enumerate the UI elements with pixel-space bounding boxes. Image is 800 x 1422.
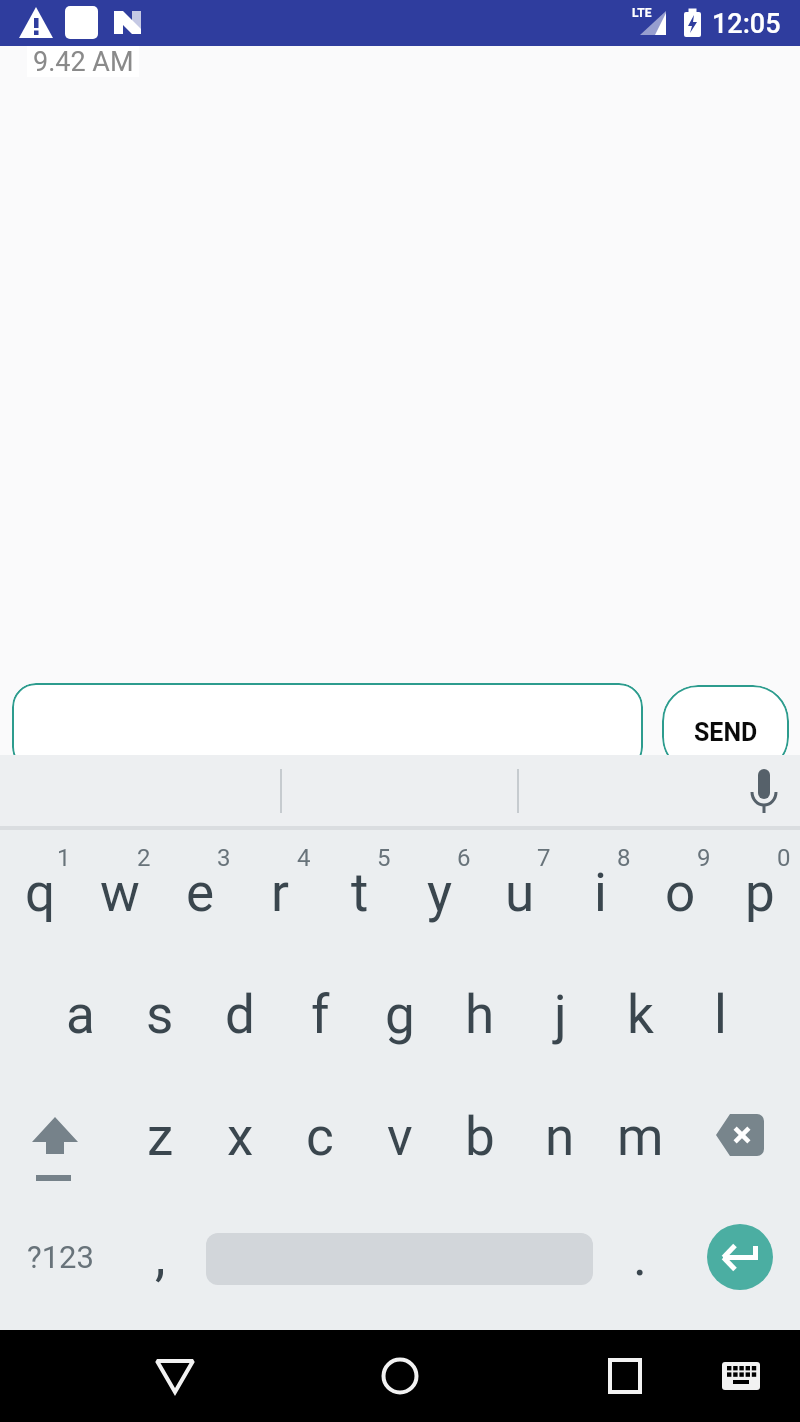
button[interactable]: q xyxy=(0,830,80,952)
button[interactable]: SEND xyxy=(662,685,789,755)
button[interactable] xyxy=(680,1074,800,1196)
button[interactable]: v xyxy=(360,1074,440,1196)
button[interactable] xyxy=(732,761,796,825)
button[interactable]: f xyxy=(280,952,360,1074)
staticText: 9.42 AM xyxy=(33,46,134,77)
button[interactable]: t xyxy=(320,830,400,952)
button[interactable]: . xyxy=(600,1196,680,1318)
staticText: SEND xyxy=(694,718,758,747)
button[interactable]: i xyxy=(560,830,640,952)
button[interactable]: b xyxy=(440,1074,520,1196)
staticText: u xyxy=(505,862,535,924)
button[interactable]: m xyxy=(600,1074,680,1196)
staticText: 0 xyxy=(777,844,791,872)
staticText: f xyxy=(311,984,330,1046)
button[interactable]: g xyxy=(360,952,440,1074)
button[interactable] xyxy=(453,1330,680,1422)
staticText: , xyxy=(155,1226,166,1288)
staticText: m xyxy=(617,1106,664,1168)
button[interactable]: r xyxy=(240,830,320,952)
staticText: p xyxy=(745,862,775,924)
staticText: v xyxy=(387,1106,413,1168)
staticText: b xyxy=(465,1106,495,1168)
staticText: k xyxy=(627,984,654,1046)
staticText: w xyxy=(100,862,140,924)
button[interactable]: l xyxy=(680,952,760,1074)
button[interactable]: x xyxy=(200,1074,280,1196)
staticText: 6 xyxy=(457,844,471,872)
button[interactable]: h xyxy=(440,952,520,1074)
staticText: 3 xyxy=(217,844,231,872)
staticText: c xyxy=(306,1106,334,1168)
staticText: LTE xyxy=(632,6,652,20)
button[interactable]: , xyxy=(120,1196,200,1318)
button[interactable]: y xyxy=(400,830,480,952)
staticText: . xyxy=(633,1226,647,1288)
staticText: r xyxy=(271,862,289,924)
staticText: 5 xyxy=(377,844,391,872)
staticText: l xyxy=(714,984,727,1046)
button[interactable] xyxy=(0,1330,226,1422)
button[interactable]: z xyxy=(120,1074,200,1196)
staticText: n xyxy=(545,1106,575,1168)
staticText: s xyxy=(146,984,174,1046)
staticText: g xyxy=(385,984,415,1046)
staticText: q xyxy=(25,862,56,924)
staticText: h xyxy=(465,984,495,1046)
staticText: 4 xyxy=(297,844,311,872)
button[interactable] xyxy=(226,1330,453,1422)
button[interactable]: e xyxy=(160,830,240,952)
staticText: d xyxy=(225,984,255,1046)
button[interactable]: u xyxy=(480,830,560,952)
staticText: y xyxy=(427,862,453,924)
staticText: 9 xyxy=(697,844,711,872)
staticText: 8 xyxy=(617,844,631,872)
staticText: 1 xyxy=(57,844,71,872)
button[interactable]: ?123 xyxy=(18,1196,102,1318)
button[interactable]: s xyxy=(120,952,200,1074)
button[interactable] xyxy=(707,1224,773,1290)
button[interactable]: c xyxy=(280,1074,360,1196)
button[interactable]: k xyxy=(600,952,680,1074)
button[interactable] xyxy=(680,1330,800,1422)
staticText: z xyxy=(147,1106,174,1168)
button[interactable] xyxy=(12,683,643,755)
button[interactable]: a xyxy=(40,952,120,1074)
button[interactable]: p xyxy=(720,830,800,952)
staticText: i xyxy=(594,862,607,924)
staticText: 12:05 xyxy=(712,8,781,40)
button[interactable]: o xyxy=(640,830,720,952)
button[interactable]: d xyxy=(200,952,280,1074)
staticText: o xyxy=(665,862,696,924)
staticText: e xyxy=(186,862,215,924)
staticText: t xyxy=(351,862,369,924)
staticText: j xyxy=(554,984,567,1046)
staticText: a xyxy=(66,984,95,1046)
staticText: 7 xyxy=(537,844,551,872)
button[interactable]: j xyxy=(520,952,600,1074)
button[interactable]: n xyxy=(520,1074,600,1196)
staticText: 2 xyxy=(137,844,151,872)
staticText: x xyxy=(227,1106,254,1168)
button[interactable]: w xyxy=(80,830,160,952)
button[interactable] xyxy=(0,1074,120,1196)
staticText: ?123 xyxy=(27,1239,94,1275)
